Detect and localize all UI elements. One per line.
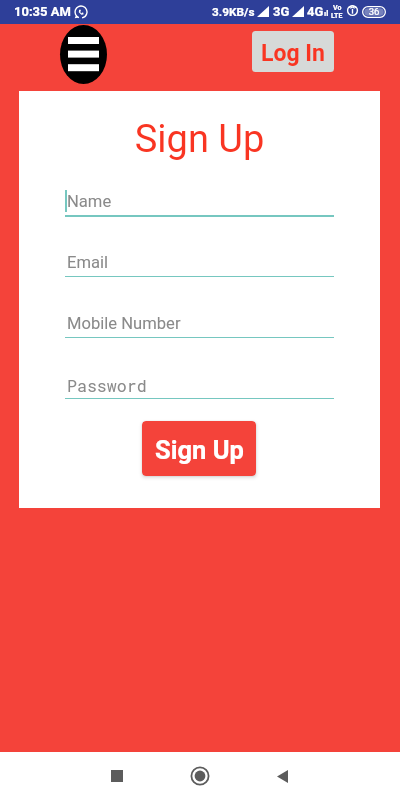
staticText: Name: [67, 192, 112, 211]
staticText: 3.9KB/s: [212, 5, 255, 19]
staticText: Sign Up: [19, 117, 380, 162]
staticText: Vo: [333, 4, 342, 12]
staticText: ıl: [324, 9, 329, 18]
button[interactable]: Name: [65, 192, 334, 228]
button[interactable]: Sign Up: [142, 421, 256, 476]
staticText: 10:35 AM: [14, 4, 71, 19]
staticText: Password: [67, 375, 147, 397]
staticText: LTE: [331, 12, 343, 20]
staticText: 3G: [273, 4, 290, 19]
staticText: 36: [362, 6, 386, 18]
button[interactable]: Password: [65, 375, 334, 411]
button[interactable]: Log In: [252, 31, 334, 72]
button[interactable]: Home: [176, 752, 224, 800]
staticText: 4G: [307, 4, 324, 19]
staticText: Log In: [261, 40, 325, 67]
button[interactable]: Mobile Number: [65, 314, 334, 350]
staticText: Mobile Number: [67, 314, 181, 333]
button[interactable]: Menu logo: [60, 25, 107, 84]
button[interactable]: Back: [258, 752, 306, 800]
staticText: Sign Up: [155, 435, 244, 465]
button[interactable]: Email: [65, 253, 334, 289]
staticText: Email: [67, 253, 109, 272]
button[interactable]: Recent apps: [93, 752, 141, 800]
